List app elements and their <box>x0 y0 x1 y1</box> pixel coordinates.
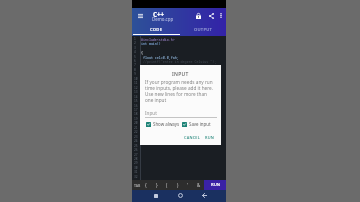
staticText: RUN <box>205 135 214 140</box>
button[interactable]: CODE <box>133 25 180 34</box>
staticText: 8 <box>134 68 136 72</box>
staticText: 11 <box>134 81 138 85</box>
staticText: 29 <box>134 161 138 165</box>
staticText: int main() <box>141 41 161 45</box>
staticText: 31 <box>134 170 138 174</box>
staticText: 21 <box>134 126 138 130</box>
staticText: & <box>197 182 201 188</box>
staticText: #include<stdio.h> <box>141 37 175 41</box>
button[interactable]: Back <box>198 190 210 201</box>
staticText: ' <box>187 182 188 188</box>
staticText: 27 <box>134 153 138 157</box>
button[interactable]: TAB <box>133 180 141 190</box>
button[interactable]: Home <box>174 190 186 201</box>
button[interactable]: Recent apps <box>150 190 162 201</box>
staticText: RUN <box>211 182 220 188</box>
button[interactable]: RUN <box>203 133 216 142</box>
staticText: //printf("enter in degree Celsius "); <box>143 59 217 63</box>
button[interactable]: ( <box>161 180 172 190</box>
button[interactable]: RUN <box>204 180 226 190</box>
staticText: 22 <box>134 130 138 134</box>
staticText: 17 <box>134 108 138 112</box>
staticText: 25 <box>134 144 138 148</box>
staticText: CODE <box>150 27 163 33</box>
staticText: 26 <box>134 148 138 152</box>
staticText: 15 <box>134 99 138 103</box>
button[interactable]: OUTPUT <box>180 25 226 34</box>
button[interactable]: Lock code <box>193 10 203 21</box>
staticText: 23 <box>134 135 138 139</box>
button[interactable]: CANCEL <box>182 133 202 142</box>
staticText: 18 <box>134 112 138 116</box>
staticText: C++ <box>153 10 165 18</box>
button[interactable]: Open navigation menu <box>133 10 148 21</box>
button[interactable]: { <box>140 180 151 190</box>
staticText: ( <box>166 182 168 188</box>
staticText: Input <box>145 110 157 116</box>
button[interactable]: & <box>193 180 204 190</box>
staticText: TAB <box>134 183 141 188</box>
staticText: 2 <box>134 41 136 45</box>
staticText: 19 <box>134 117 138 121</box>
staticText: 7 <box>134 63 136 67</box>
button[interactable]: ' <box>182 180 193 190</box>
staticText: 30 <box>134 166 138 170</box>
staticText: { <box>141 50 143 54</box>
staticText: Show always <box>153 121 180 127</box>
staticText: If your program needs any run <box>145 79 213 85</box>
staticText: 10 <box>134 77 138 81</box>
staticText: float cel=0.0,fah; <box>143 55 179 59</box>
staticText: } <box>156 182 158 188</box>
button[interactable]: More options <box>216 10 226 21</box>
staticText: 16 <box>134 104 138 108</box>
staticText: Use new lines for more than <box>145 91 207 97</box>
staticText: 1 <box>134 37 136 41</box>
staticText: 4 <box>134 50 136 54</box>
staticText: 5 <box>134 55 136 59</box>
staticText: ) <box>177 182 179 188</box>
button[interactable]: Share <box>206 10 216 21</box>
staticText: time inputs, please add it here. <box>145 85 213 91</box>
staticText: 24 <box>134 139 138 143</box>
button[interactable]: ) <box>172 180 183 190</box>
button[interactable]: Save input <box>182 121 211 127</box>
staticText: Demo.cpp <box>152 16 174 22</box>
staticText: 28 <box>134 157 138 161</box>
staticText: 3 <box>134 46 136 50</box>
staticText: CANCEL <box>184 135 200 140</box>
button[interactable]: } <box>151 180 162 190</box>
staticText: 12 <box>134 86 138 90</box>
staticText: 32 <box>134 175 138 179</box>
button[interactable]: Show always <box>146 121 180 127</box>
staticText: one input <box>145 97 167 103</box>
staticText: 20 <box>134 121 138 125</box>
staticText: Save input <box>189 121 211 127</box>
staticText: 9 <box>134 72 136 76</box>
staticText: INPUT <box>172 71 189 78</box>
staticText: 14 <box>134 95 138 99</box>
staticText: 6 <box>134 59 136 63</box>
staticText: { <box>145 182 147 188</box>
staticText: 13 <box>134 90 138 94</box>
staticText: OUTPUT <box>194 27 213 33</box>
